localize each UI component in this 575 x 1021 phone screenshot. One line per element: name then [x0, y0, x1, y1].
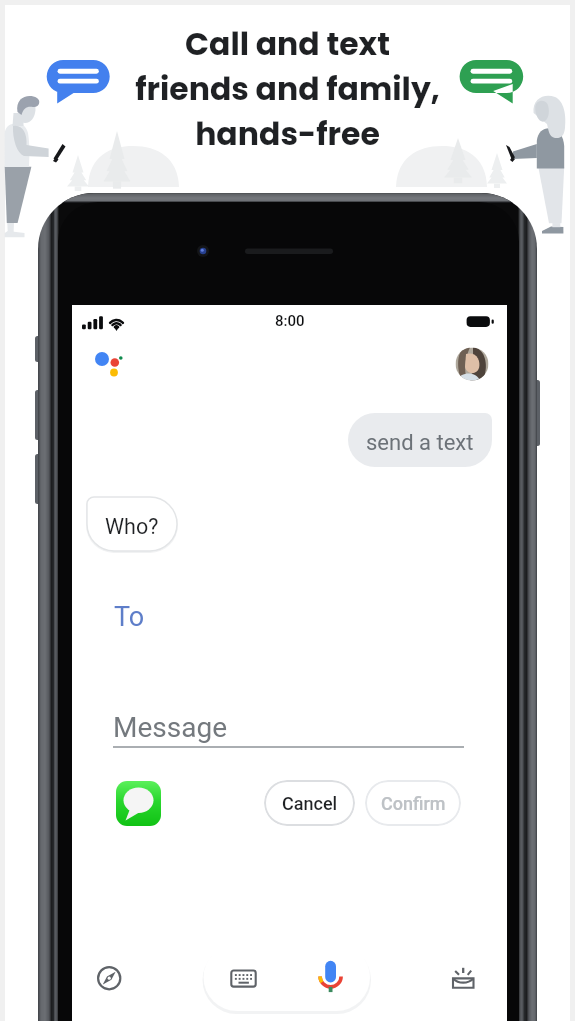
staticText: send a text — [366, 430, 474, 456]
staticText: Call and text friends and family, hands-… — [135, 22, 440, 156]
staticText: To — [114, 601, 145, 633]
staticText: Who? — [105, 514, 159, 539]
button[interactable]: send a text — [348, 416, 492, 470]
button[interactable]: Message — [113, 711, 227, 744]
button[interactable]: Keyboard — [209, 950, 287, 1006]
button[interactable]: Cancel — [264, 780, 355, 826]
button[interactable]: Snapshot — [444, 960, 482, 998]
button[interactable]: Confirm — [365, 780, 461, 826]
button[interactable]: Google Assistant — [89, 345, 129, 381]
button[interactable]: Account — [455, 347, 489, 381]
button[interactable]: Who? — [87, 499, 177, 553]
staticText: Message — [113, 711, 227, 744]
button[interactable]: Voice search — [294, 950, 368, 1006]
staticText: 8:00 — [275, 312, 305, 330]
button[interactable]: Explore — [90, 960, 128, 998]
staticText: Cancel — [282, 793, 338, 814]
staticText: Confirm — [381, 793, 446, 814]
button[interactable]: To — [114, 601, 145, 633]
